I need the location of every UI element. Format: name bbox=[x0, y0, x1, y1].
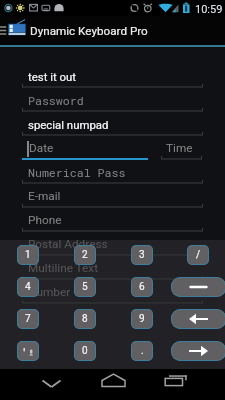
button[interactable]: Number bbox=[22, 281, 203, 305]
button[interactable]: 4 bbox=[17, 277, 39, 297]
staticText: Dynamic Keyboard Pro bbox=[30, 24, 148, 38]
staticText: 6 bbox=[139, 281, 145, 293]
button[interactable]: special numpad bbox=[22, 113, 203, 137]
button[interactable]: 5 bbox=[74, 277, 96, 297]
staticText: Postal Address bbox=[28, 237, 108, 251]
staticText: Number bbox=[28, 285, 71, 299]
staticText: Date bbox=[29, 141, 54, 155]
button[interactable]: Recent apps bbox=[162, 369, 191, 400]
staticText: 3 bbox=[139, 249, 145, 261]
button[interactable]: 7 bbox=[17, 309, 39, 329]
staticText: E-mail bbox=[28, 189, 61, 203]
staticText: / bbox=[196, 249, 201, 261]
button[interactable]: 2 bbox=[74, 245, 96, 265]
staticText: Phone bbox=[28, 213, 62, 227]
button[interactable]: 6 bbox=[131, 277, 153, 297]
button[interactable]: minus bbox=[171, 277, 225, 297]
button[interactable]: Postal Address bbox=[22, 233, 203, 257]
staticText: 7 bbox=[25, 313, 31, 325]
button[interactable]: enter bbox=[171, 341, 225, 361]
button[interactable]: Hide keyboard bbox=[37, 369, 66, 400]
staticText: 2 bbox=[82, 249, 88, 261]
button[interactable]: 0 bbox=[74, 341, 96, 361]
button[interactable]: Multiline Text bbox=[22, 257, 203, 281]
button[interactable]: 3 bbox=[131, 245, 153, 265]
button[interactable]: Home bbox=[99, 369, 128, 400]
staticText: Password bbox=[28, 93, 84, 108]
staticText: 10:59 bbox=[195, 3, 223, 16]
button[interactable]: / bbox=[187, 245, 209, 265]
button[interactable]: Password bbox=[22, 89, 203, 113]
button[interactable]: backspace bbox=[171, 309, 225, 329]
button[interactable]: Phone bbox=[22, 209, 203, 233]
button[interactable]: Time bbox=[161, 137, 202, 161]
button[interactable]: comma bbox=[17, 341, 39, 361]
button[interactable]: 9 bbox=[131, 309, 153, 329]
staticText: Numerical Pass bbox=[28, 165, 126, 180]
staticText: Time bbox=[166, 141, 193, 155]
button[interactable]: Navigate up bbox=[0, 16, 30, 45]
staticText: 8 bbox=[82, 313, 88, 325]
button[interactable]: test it out bbox=[22, 65, 203, 89]
button[interactable]: 8 bbox=[74, 309, 96, 329]
staticText: 9 bbox=[139, 313, 145, 325]
staticText: special numpad bbox=[28, 118, 109, 131]
staticText: 1 bbox=[25, 249, 31, 261]
button[interactable]: 1 bbox=[17, 245, 39, 265]
staticText: test it out bbox=[28, 70, 77, 83]
staticText: 0 bbox=[82, 345, 88, 357]
staticText: 5 bbox=[82, 281, 88, 293]
staticText: 4 bbox=[25, 281, 31, 293]
staticText: Multiline Text bbox=[28, 261, 99, 275]
button[interactable]: . bbox=[131, 341, 153, 361]
button[interactable]: E-mail bbox=[22, 185, 203, 209]
button[interactable]: Date bbox=[22, 137, 148, 161]
staticText: . bbox=[141, 345, 144, 357]
button[interactable]: Numerical Pass bbox=[22, 161, 203, 185]
